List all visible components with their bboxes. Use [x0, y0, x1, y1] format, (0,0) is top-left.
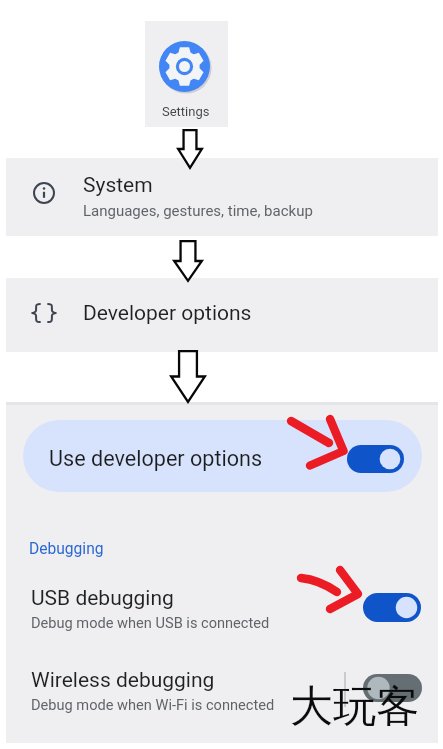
- staticText: Debugging: [29, 540, 104, 558]
- staticText: Wireless debugging: [31, 668, 215, 693]
- other: Wireless debugging toggle: [363, 674, 422, 702]
- button[interactable]: Developer options: [6, 278, 438, 352]
- staticText: Languages, gestures, time, backup: [83, 202, 313, 220]
- button[interactable]: System: [6, 158, 438, 236]
- staticText: Developer options: [83, 301, 252, 326]
- staticText: Use developer options: [49, 446, 263, 471]
- button[interactable]: Wireless debugging: [6, 662, 438, 724]
- button[interactable]: Use developer options: [23, 420, 422, 492]
- button[interactable]: USB debugging: [6, 580, 438, 642]
- button[interactable]: Settings app: [145, 21, 228, 127]
- staticText: Debug mode when Wi-Fi is connected: [31, 696, 275, 713]
- other: USB debugging toggle: [363, 593, 421, 622]
- staticText: Settings: [162, 104, 210, 119]
- staticText: USB debugging: [31, 586, 174, 611]
- staticText: Debug mode when USB is connected: [31, 614, 270, 631]
- staticText: 大玩客: [290, 680, 419, 734]
- staticText: System: [83, 173, 153, 198]
- other: Use developer options toggle: [347, 445, 404, 473]
